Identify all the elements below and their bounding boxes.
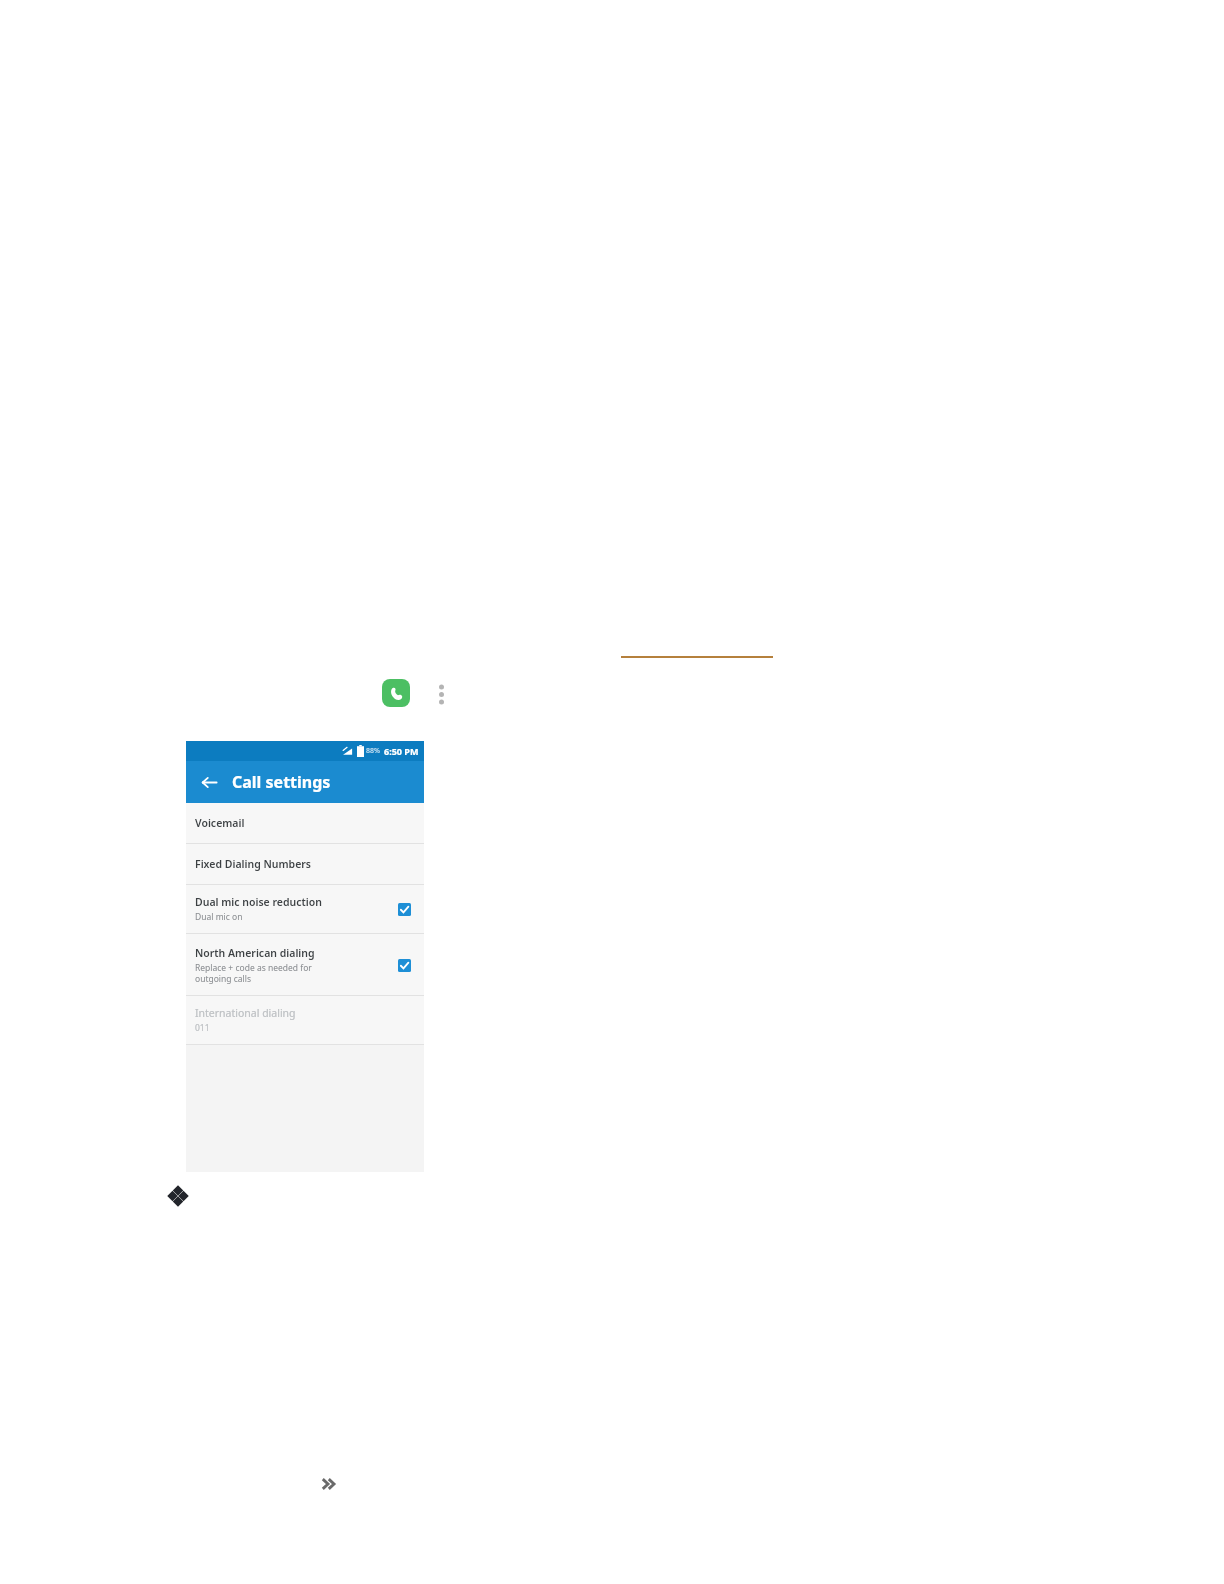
button[interactable]: North American dialing [186,934,424,995]
button[interactable]: North American dialing checkbox [393,954,415,976]
staticText: Call settings [232,771,331,793]
button[interactable]: Dual mic noise reduction [186,885,424,933]
staticText: 88% [366,746,380,756]
button[interactable]: More options [431,681,451,707]
button[interactable]: Fixed Dialing Numbers [186,844,424,884]
button[interactable]: Dual mic noise reduction checkbox [393,898,415,920]
staticText: 011 [195,1022,210,1034]
button[interactable]: Voicemail [186,803,424,843]
staticText: Dual mic on [195,911,243,923]
staticText: 6:50 PM [384,745,419,757]
staticText: Fixed Dialing Numbers [195,857,312,871]
staticText: Dual mic noise reduction [195,895,322,909]
staticText: Replace + code as needed for outgoing ca… [195,962,312,984]
staticText: Voicemail [195,816,245,830]
button[interactable]: Navigate up [194,767,224,797]
staticText: International dialing [195,1006,296,1020]
button[interactable]: Phone app [382,679,410,707]
staticText: North American dialing [195,946,315,960]
button[interactable]: International dialing [186,996,424,1044]
